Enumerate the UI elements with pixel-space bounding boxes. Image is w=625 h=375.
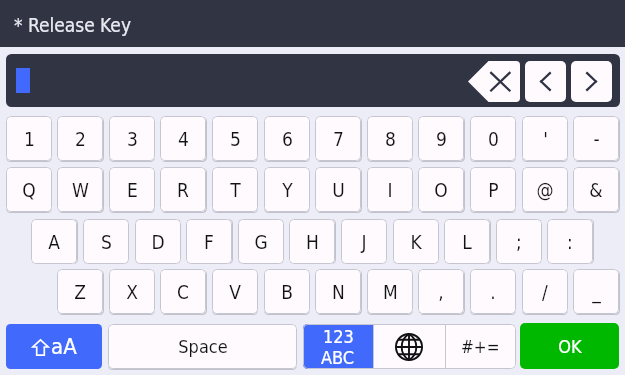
button[interactable]: X	[109, 269, 155, 314]
staticText: 2	[75, 128, 86, 150]
button[interactable]: 9	[418, 116, 464, 161]
button[interactable]: &	[573, 167, 619, 212]
button[interactable]: A	[31, 219, 77, 264]
button[interactable]: D	[135, 219, 181, 264]
button[interactable]: E	[109, 167, 155, 212]
staticText: 3	[127, 128, 138, 150]
button[interactable]: V	[212, 269, 258, 314]
button[interactable]: S	[83, 219, 129, 264]
button[interactable]: 4	[160, 116, 206, 161]
staticText: ABC	[321, 347, 355, 368]
staticText: 8	[385, 128, 396, 150]
button[interactable]: 8	[367, 116, 413, 161]
button[interactable]: I	[367, 167, 413, 212]
button[interactable]: H	[289, 219, 335, 264]
button[interactable]: aA	[6, 324, 102, 369]
staticText: 9	[436, 128, 447, 150]
button[interactable]: 123	[303, 324, 373, 369]
button[interactable]: .	[470, 269, 516, 314]
button[interactable]: 2	[57, 116, 103, 161]
button[interactable]: Q	[6, 167, 52, 212]
button[interactable]: Change language	[373, 324, 445, 369]
staticText: aA	[51, 334, 77, 360]
button[interactable]: J	[341, 219, 387, 264]
staticText: J	[361, 231, 367, 253]
button[interactable]: K	[393, 219, 439, 264]
staticText: 5	[230, 128, 241, 150]
button[interactable]: T	[212, 167, 258, 212]
staticText: X	[126, 281, 138, 303]
button[interactable]: O	[418, 167, 464, 212]
staticText: /	[542, 281, 548, 303]
button[interactable]: Space	[108, 324, 297, 369]
staticText: #+=	[461, 337, 500, 357]
button[interactable]: 1	[6, 116, 52, 161]
staticText: H	[306, 231, 319, 253]
button[interactable]: Z	[57, 269, 103, 314]
staticText: F	[204, 231, 214, 253]
button[interactable]: 0	[470, 116, 516, 161]
staticText: Space	[178, 336, 228, 357]
staticText: Y	[282, 179, 293, 201]
staticText: N	[332, 281, 345, 303]
staticText: D	[151, 231, 165, 253]
button[interactable]: Move cursor left	[525, 61, 566, 102]
staticText: 123	[323, 326, 354, 347]
button[interactable]: :	[547, 219, 593, 264]
button[interactable]	[6, 54, 620, 107]
staticText: ;	[516, 231, 522, 253]
button[interactable]: U	[315, 167, 361, 212]
button[interactable]: F	[186, 219, 232, 264]
staticText: G	[254, 231, 268, 253]
button[interactable]: /	[522, 269, 568, 314]
button[interactable]: ;	[496, 219, 542, 264]
button[interactable]: P	[470, 167, 516, 212]
button[interactable]: OK	[520, 323, 619, 369]
staticText: Q	[22, 179, 36, 201]
button[interactable]: L	[444, 219, 490, 264]
staticText: 7	[333, 128, 344, 150]
staticText: 6	[282, 128, 293, 150]
button[interactable]: Y	[264, 167, 310, 212]
button[interactable]: 7	[315, 116, 361, 161]
staticText: A	[48, 231, 60, 253]
button[interactable]: Backspace	[468, 61, 520, 102]
staticText: R	[177, 179, 189, 201]
staticText: C	[177, 281, 189, 303]
button[interactable]: -	[573, 116, 619, 161]
button[interactable]: W	[57, 167, 103, 212]
button[interactable]: N	[315, 269, 361, 314]
button[interactable]: ,	[418, 269, 464, 314]
button[interactable]: B	[264, 269, 310, 314]
button[interactable]: @	[522, 167, 568, 212]
staticText: O	[434, 179, 448, 201]
staticText: P	[488, 179, 499, 201]
button[interactable]: 6	[264, 116, 310, 161]
staticText: B	[281, 281, 293, 303]
staticText: W	[72, 179, 89, 201]
staticText: U	[332, 179, 345, 201]
staticText: M	[383, 281, 398, 303]
staticText: T	[230, 179, 241, 201]
button[interactable]: #+=	[445, 324, 516, 369]
button[interactable]: 5	[212, 116, 258, 161]
staticText: I	[387, 179, 393, 201]
staticText: K	[410, 231, 422, 253]
button[interactable]: G	[238, 219, 284, 264]
staticText: _	[592, 281, 601, 303]
button[interactable]: '	[522, 116, 568, 161]
staticText: 1	[24, 128, 35, 150]
staticText: &	[589, 179, 603, 201]
button[interactable]: _	[573, 269, 619, 314]
staticText: -	[593, 128, 600, 150]
button[interactable]: C	[160, 269, 206, 314]
button[interactable]: 3	[109, 116, 155, 161]
button[interactable]: Move cursor right	[571, 61, 612, 102]
staticText: ,	[438, 281, 444, 303]
staticText: L	[462, 231, 472, 253]
button[interactable]: R	[160, 167, 206, 212]
staticText: S	[101, 231, 112, 253]
button[interactable]: M	[367, 269, 413, 314]
staticText: '	[543, 128, 548, 150]
staticText: :	[567, 231, 573, 253]
